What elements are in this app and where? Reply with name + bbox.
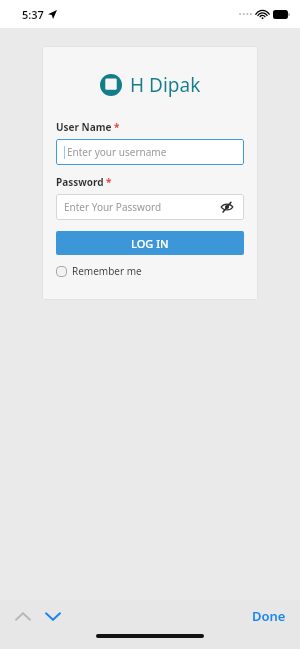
staticText: * bbox=[106, 175, 112, 189]
button[interactable]: Remember me bbox=[56, 264, 142, 278]
staticText: Password bbox=[56, 175, 104, 189]
button[interactable]: Done bbox=[238, 601, 300, 631]
staticText: Enter Your Password bbox=[64, 200, 162, 214]
button[interactable]: Show password bbox=[218, 198, 236, 216]
staticText: * bbox=[114, 120, 120, 134]
staticText: LOG IN bbox=[131, 236, 169, 251]
button[interactable]: Enter Your Password bbox=[56, 194, 244, 220]
staticText: Remember me bbox=[72, 264, 142, 278]
staticText: User Name bbox=[56, 120, 112, 134]
staticText: Enter your username bbox=[67, 145, 167, 159]
staticText: 5:37 bbox=[22, 7, 44, 22]
button[interactable]: Previous field bbox=[12, 605, 34, 627]
button[interactable]: Next field bbox=[42, 605, 64, 627]
staticText: H Dipak bbox=[130, 72, 201, 98]
button[interactable]: LOG IN bbox=[56, 231, 244, 255]
button[interactable]: Enter your username bbox=[56, 139, 244, 165]
staticText: Done bbox=[252, 607, 286, 625]
